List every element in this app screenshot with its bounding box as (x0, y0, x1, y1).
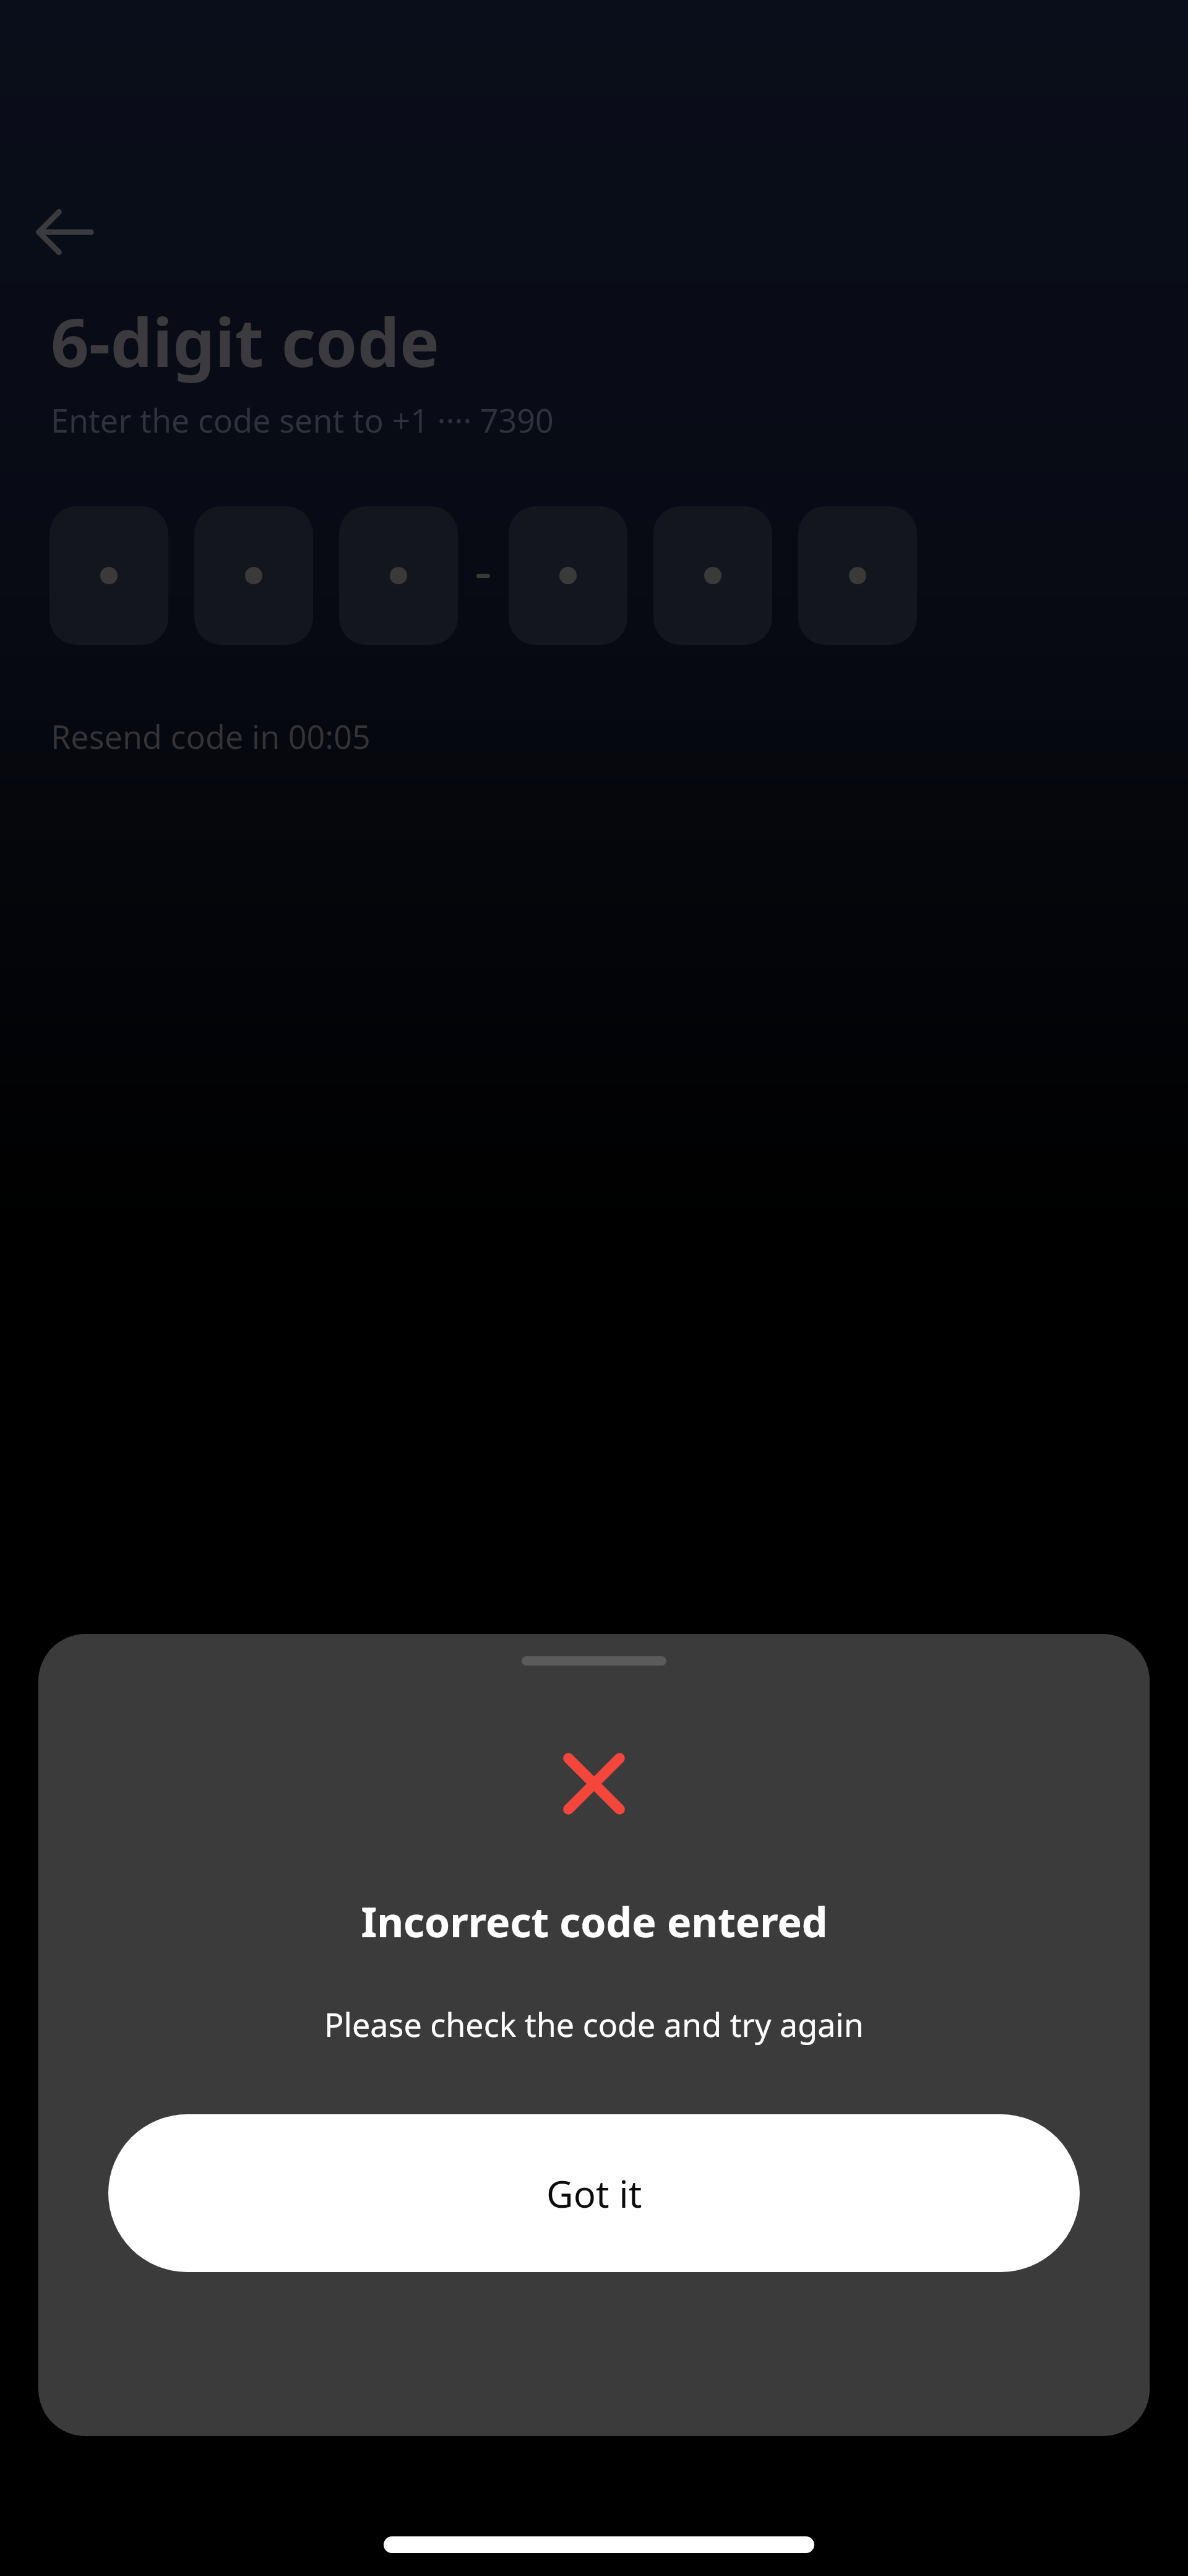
button[interactable] (49, 506, 168, 645)
staticText: Got it (546, 2168, 642, 2219)
button[interactable] (798, 506, 917, 645)
staticText: Enter the code sent to +1 ···· 7390 (51, 398, 554, 442)
button[interactable] (194, 506, 313, 645)
button[interactable]: Got it (108, 2114, 1080, 2272)
button[interactable]: Resend code in 00:05 (51, 714, 371, 758)
staticText: 6-digit code (51, 296, 440, 387)
button[interactable]: Back (25, 192, 105, 272)
staticText: Please check the code and try again (324, 2002, 864, 2046)
button[interactable] (509, 506, 627, 645)
button[interactable] (339, 506, 458, 645)
staticText: Incorrect code entered (361, 1893, 828, 1949)
button[interactable] (653, 506, 772, 645)
